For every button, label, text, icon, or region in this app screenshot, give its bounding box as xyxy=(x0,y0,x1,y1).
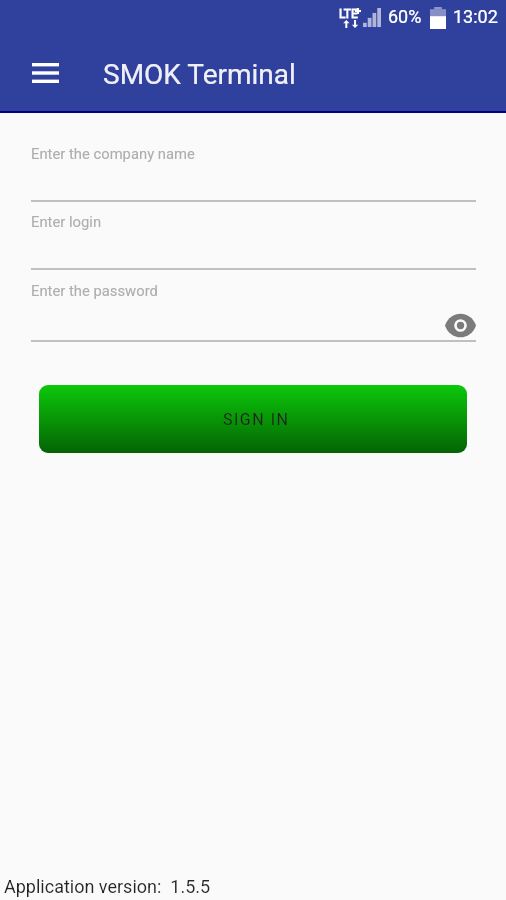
staticText: Enter the password xyxy=(31,282,158,299)
button[interactable]: Enter the company name xyxy=(31,140,476,166)
button[interactable]: Show password xyxy=(443,308,477,342)
button[interactable]: Open navigation menu xyxy=(20,50,71,96)
staticText: SIGN IN xyxy=(223,410,290,429)
staticText: 60% xyxy=(388,6,422,27)
staticText: LTE xyxy=(339,7,358,21)
button[interactable]: Enter the password xyxy=(31,277,476,303)
button[interactable]: SIGN IN xyxy=(39,385,467,453)
staticText: SMOK Terminal xyxy=(103,58,296,91)
staticText: Application version: 1.5.5 xyxy=(4,876,211,897)
button[interactable]: Enter login xyxy=(31,208,476,234)
staticText: Enter login xyxy=(31,213,102,230)
staticText: 13:02 xyxy=(453,6,498,27)
staticText: Enter the company name xyxy=(31,145,195,162)
